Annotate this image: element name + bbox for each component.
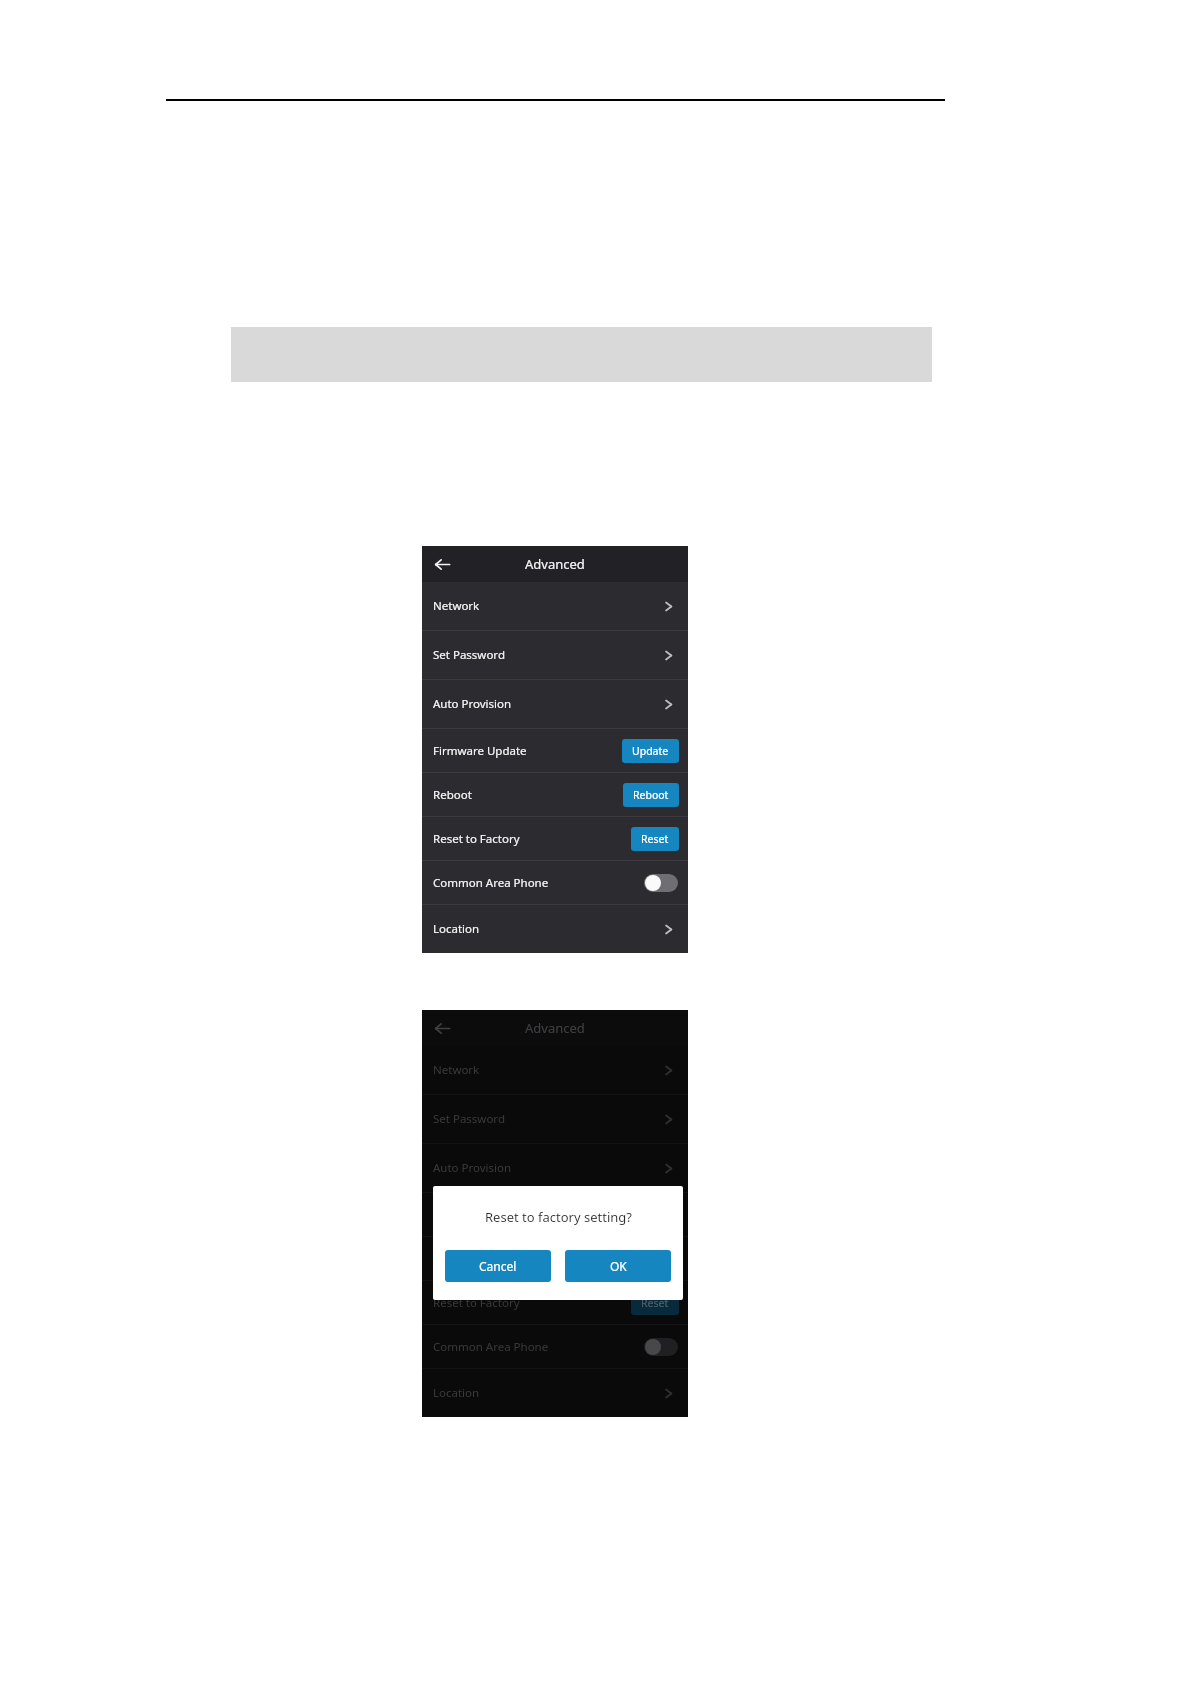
- button[interactable]: Common Area Phone: [422, 861, 688, 904]
- button[interactable]: Back: [428, 550, 456, 578]
- button[interactable]: Common Area Phone: [422, 1325, 688, 1368]
- staticText: Location: [433, 921, 663, 937]
- staticText: Update: [632, 744, 669, 758]
- button[interactable]: Reboot: [623, 783, 679, 807]
- button[interactable]: Update: [622, 1203, 679, 1227]
- staticText: Network: [433, 598, 663, 614]
- button[interactable]: Auto Provision: [422, 680, 688, 728]
- button[interactable]: Reboot: [623, 1247, 679, 1271]
- staticText: Cancel: [479, 1258, 517, 1274]
- button[interactable]: Location: [422, 905, 688, 953]
- button[interactable]: Cancel: [445, 1250, 551, 1282]
- button[interactable]: Reset: [631, 827, 679, 851]
- button[interactable]: Update: [622, 739, 679, 763]
- other: Common Area Phone toggle: [644, 1338, 678, 1356]
- button[interactable]: Location: [422, 1369, 688, 1417]
- button[interactable]: Auto Provision: [422, 1144, 688, 1192]
- button[interactable]: Back: [428, 1014, 456, 1042]
- staticText: Network: [433, 1062, 663, 1078]
- button[interactable]: Network: [422, 582, 688, 630]
- staticText: Common Area Phone: [433, 1339, 644, 1355]
- staticText: Advanced: [525, 1019, 585, 1037]
- other: Common Area Phone toggle: [644, 874, 678, 892]
- button[interactable]: Reset: [631, 1291, 679, 1315]
- staticText: Auto Provision: [433, 696, 663, 712]
- staticText: Reset to factory setting?: [485, 1208, 632, 1226]
- staticText: Auto Provision: [433, 1160, 663, 1176]
- button[interactable]: Network: [422, 1046, 688, 1094]
- staticText: OK: [610, 1258, 627, 1274]
- staticText: Reboot: [633, 788, 669, 802]
- staticText: Reset: [641, 832, 669, 846]
- staticText: Set Password: [433, 647, 663, 663]
- staticText: Reset: [641, 1296, 669, 1310]
- staticText: Advanced: [525, 555, 585, 573]
- staticText: Reset to Factory: [433, 1295, 631, 1311]
- staticText: Firmware Update: [433, 1207, 622, 1223]
- button[interactable]: Set Password: [422, 631, 688, 679]
- staticText: Firmware Update: [433, 743, 622, 759]
- staticText: Reboot: [433, 1251, 623, 1267]
- staticText: Location: [433, 1385, 663, 1401]
- staticText: Reboot: [433, 787, 623, 803]
- button[interactable]: OK: [565, 1250, 671, 1282]
- staticText: Set Password: [433, 1111, 663, 1127]
- staticText: Common Area Phone: [433, 875, 644, 891]
- staticText: Reset to Factory: [433, 831, 631, 847]
- button[interactable]: Set Password: [422, 1095, 688, 1143]
